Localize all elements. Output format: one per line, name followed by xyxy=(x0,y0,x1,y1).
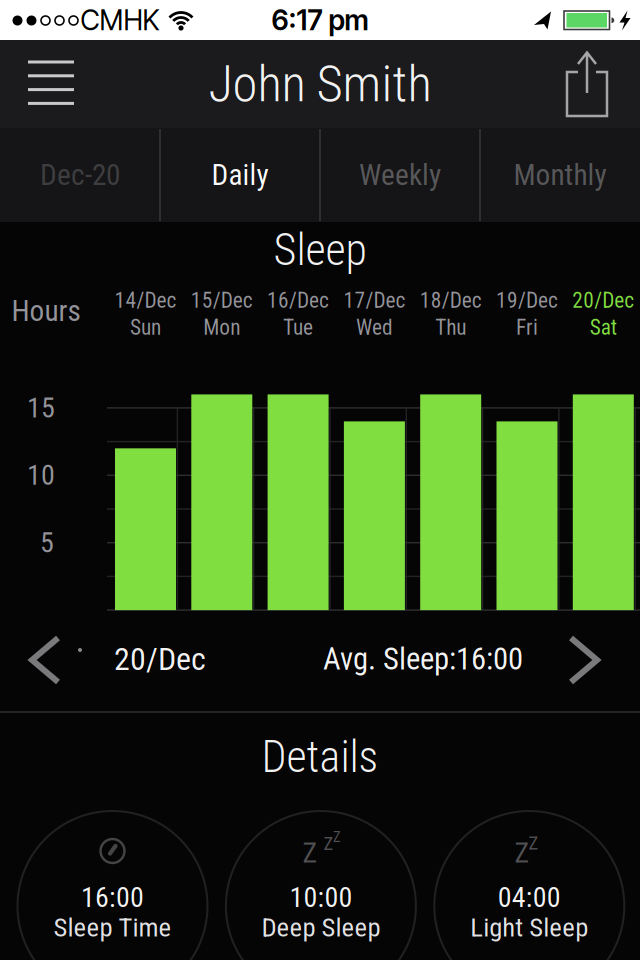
staticText: Light Sleep xyxy=(470,912,588,943)
staticText: 6:17 pm xyxy=(271,3,368,37)
staticText: 18/Dec xyxy=(420,288,482,313)
staticText: Tue xyxy=(283,315,313,340)
staticText: 10:00 xyxy=(289,881,352,914)
button[interactable] xyxy=(557,51,617,117)
staticText: Mon xyxy=(203,315,240,340)
staticText: 5 xyxy=(40,526,54,559)
staticText: 20/Dec xyxy=(572,288,634,313)
staticText: Weekly xyxy=(359,158,441,192)
staticText: John Smith xyxy=(208,54,431,114)
staticText: 16/Dec xyxy=(267,288,329,313)
staticText: Wed xyxy=(356,315,393,340)
staticText: Fri xyxy=(516,315,538,340)
staticText: Z xyxy=(333,828,341,846)
staticText: 04:00 xyxy=(498,881,561,914)
staticText: Z xyxy=(514,837,529,869)
staticText: Monthly xyxy=(513,158,606,192)
button[interactable] xyxy=(28,636,64,684)
button[interactable] xyxy=(565,636,601,684)
staticText: Sleep xyxy=(273,224,366,276)
staticText: Thu xyxy=(435,315,466,340)
staticText: Deep Sleep xyxy=(261,912,380,943)
staticText: Daily xyxy=(211,158,268,192)
staticText: CMHK xyxy=(80,3,159,37)
staticText: 10 xyxy=(27,459,55,492)
staticText: Dec-20 xyxy=(40,158,120,192)
staticText: Z xyxy=(323,833,333,854)
staticText: 14/Dec xyxy=(114,288,176,313)
staticText: Details xyxy=(261,731,378,783)
staticText: 20/Dec xyxy=(114,640,206,678)
staticText: Z xyxy=(302,837,317,869)
staticText: 17/Dec xyxy=(343,288,405,313)
button[interactable] xyxy=(20,52,82,114)
button[interactable]: Weekly xyxy=(321,129,479,221)
staticText: Avg. Sleep:16:00 xyxy=(323,641,523,677)
staticText: 15 xyxy=(27,391,55,424)
button[interactable]: Monthly xyxy=(481,129,639,221)
staticText: 15/Dec xyxy=(191,288,253,313)
staticText: 19/Dec xyxy=(496,288,558,313)
staticText: Sat xyxy=(590,315,617,340)
button[interactable]: Daily xyxy=(161,129,319,221)
staticText: Hours xyxy=(11,294,80,328)
staticText: Z xyxy=(528,832,538,854)
staticText: 16:00 xyxy=(81,881,144,914)
button[interactable]: Dec-20 xyxy=(1,129,159,221)
staticText: Sleep Time xyxy=(53,912,171,943)
staticText: Sun xyxy=(130,315,161,340)
